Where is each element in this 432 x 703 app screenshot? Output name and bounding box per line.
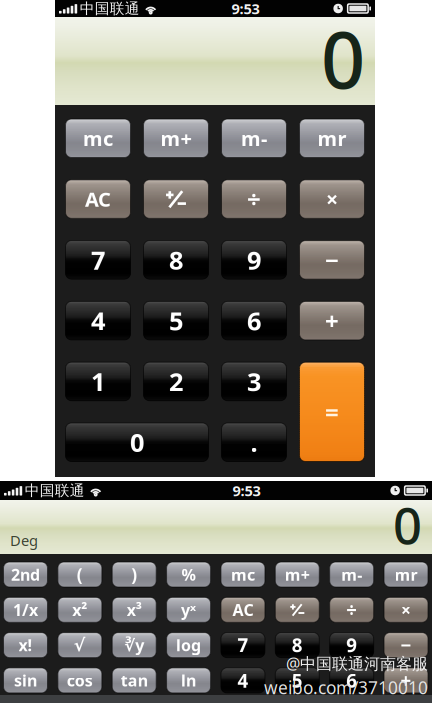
staticText: 7 bbox=[237, 633, 248, 657]
button[interactable]: 8 bbox=[143, 241, 208, 279]
staticText: 0 bbox=[393, 491, 422, 558]
staticText: 4 bbox=[237, 668, 248, 693]
staticText: tan bbox=[121, 670, 148, 691]
button[interactable]: × bbox=[299, 180, 364, 218]
button[interactable]: 2nd bbox=[3, 562, 47, 587]
staticText: × bbox=[401, 598, 411, 621]
button[interactable]: log bbox=[167, 633, 211, 658]
button[interactable]: 0 bbox=[65, 423, 208, 461]
button[interactable]: + bbox=[299, 301, 364, 340]
staticText: m- bbox=[341, 564, 362, 585]
staticText: yˣ bbox=[181, 599, 196, 620]
button[interactable]: 9 bbox=[330, 633, 374, 658]
button[interactable]: mc bbox=[221, 562, 265, 587]
button[interactable]: 6 bbox=[330, 668, 374, 693]
button[interactable]: 3 bbox=[221, 362, 286, 401]
staticText: mr bbox=[394, 564, 417, 585]
button[interactable]: ln bbox=[167, 668, 211, 693]
button[interactable]: √ bbox=[58, 633, 102, 658]
staticText: 1/x bbox=[13, 599, 38, 620]
button[interactable]: ÷ bbox=[330, 597, 374, 622]
button[interactable]: 7 bbox=[65, 241, 130, 279]
staticText: ÷ bbox=[247, 183, 261, 215]
staticText: % bbox=[182, 564, 196, 585]
staticText: 7 bbox=[91, 243, 105, 277]
button[interactable]: 1/x bbox=[3, 597, 47, 622]
staticText: ÷ bbox=[346, 597, 357, 622]
staticText: 0 bbox=[130, 425, 144, 459]
button[interactable]: 2 bbox=[143, 362, 208, 401]
button[interactable]: − bbox=[384, 633, 428, 658]
button[interactable]: m+ bbox=[275, 562, 319, 587]
button[interactable]: 4 bbox=[221, 668, 265, 693]
button[interactable]: + bbox=[384, 668, 428, 693]
button[interactable]: 4 bbox=[65, 301, 130, 340]
button[interactable]: ( bbox=[58, 562, 102, 587]
staticText: + bbox=[325, 305, 339, 337]
button[interactable]: 7 bbox=[221, 633, 265, 658]
button[interactable]: x! bbox=[3, 633, 47, 658]
button[interactable]: yˣ bbox=[167, 597, 211, 622]
staticText: 9:53 bbox=[232, 0, 260, 18]
staticText: 2nd bbox=[11, 564, 40, 585]
button[interactable]: × bbox=[384, 597, 428, 622]
staticText: x³ bbox=[127, 599, 142, 620]
staticText: 9 bbox=[346, 633, 357, 657]
staticText: 5 bbox=[169, 304, 183, 337]
staticText: @中国联通河南客服 bbox=[286, 653, 428, 674]
button[interactable]: ) bbox=[112, 562, 156, 587]
button[interactable]: 5 bbox=[143, 301, 208, 340]
staticText: ln bbox=[181, 670, 196, 691]
button[interactable]: 9 bbox=[221, 241, 286, 279]
staticText: mr bbox=[317, 125, 346, 152]
button[interactable]: m- bbox=[330, 562, 374, 587]
staticText: = bbox=[325, 396, 339, 428]
button[interactable]: AC bbox=[65, 180, 130, 218]
staticText: 中国联通 bbox=[80, 0, 140, 17]
button[interactable]: . bbox=[221, 423, 286, 461]
staticText: + bbox=[400, 668, 411, 693]
staticText: 8 bbox=[292, 633, 303, 657]
staticText: 中国联通 bbox=[25, 481, 85, 499]
staticText: x² bbox=[72, 599, 87, 620]
button[interactable]: % bbox=[167, 562, 211, 587]
button[interactable]: 8 bbox=[275, 633, 319, 658]
staticText: 6 bbox=[247, 304, 261, 337]
button[interactable] bbox=[275, 597, 319, 622]
button[interactable]: cos bbox=[58, 668, 102, 693]
button[interactable]: sin bbox=[3, 668, 47, 693]
staticText: sin bbox=[14, 670, 37, 691]
staticText: weibo.com/3710010 bbox=[264, 676, 428, 699]
staticText: 6 bbox=[346, 668, 357, 693]
button[interactable] bbox=[143, 180, 208, 218]
button[interactable]: m- bbox=[221, 119, 286, 157]
button[interactable]: − bbox=[299, 241, 364, 279]
staticText: ) bbox=[131, 563, 137, 586]
staticText: 9 bbox=[247, 243, 261, 277]
button[interactable]: AC bbox=[221, 597, 265, 622]
button[interactable]: mr bbox=[299, 119, 364, 157]
staticText: 5 bbox=[292, 668, 303, 693]
button[interactable]: m+ bbox=[143, 119, 208, 157]
staticText: ∛y bbox=[124, 634, 144, 656]
button[interactable]: ÷ bbox=[221, 180, 286, 218]
staticText: 1 bbox=[91, 365, 105, 398]
staticText: 3 bbox=[247, 365, 261, 398]
button[interactable]: 5 bbox=[275, 668, 319, 693]
button[interactable]: mc bbox=[65, 119, 130, 157]
button[interactable]: x³ bbox=[112, 597, 156, 622]
staticText: 9:53 bbox=[233, 481, 261, 500]
staticText: ( bbox=[77, 563, 83, 586]
staticText: log bbox=[176, 634, 201, 656]
button[interactable]: tan bbox=[112, 668, 156, 693]
staticText: 4 bbox=[91, 304, 105, 337]
staticText: . bbox=[250, 425, 257, 459]
button[interactable]: mr bbox=[384, 562, 428, 587]
button[interactable]: x² bbox=[58, 597, 102, 622]
staticText: 8 bbox=[169, 243, 183, 277]
button[interactable]: 1 bbox=[65, 362, 130, 401]
button[interactable]: 6 bbox=[221, 301, 286, 340]
button[interactable]: = bbox=[299, 362, 364, 461]
button[interactable]: ∛y bbox=[112, 633, 156, 658]
staticText: m+ bbox=[160, 125, 191, 152]
